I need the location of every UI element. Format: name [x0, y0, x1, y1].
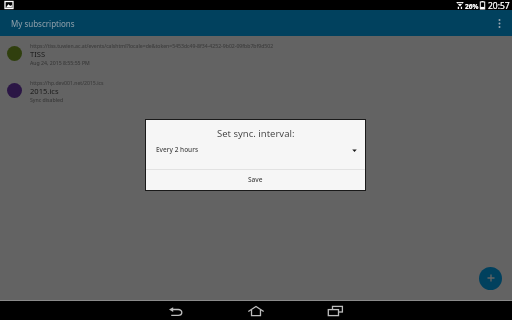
button[interactable]: Add subscription: [479, 267, 502, 290]
staticText: Every 2 hours: [156, 145, 199, 154]
staticText: 20:57: [488, 0, 510, 10]
staticText: My subscriptions: [11, 18, 75, 29]
button[interactable]: More options: [489, 13, 509, 33]
button[interactable]: Recent apps: [323, 302, 348, 320]
button[interactable]: https://hp.dev001.net/2015.ics: [0, 72, 512, 109]
button[interactable]: Save: [146, 170, 365, 190]
staticText: TISS: [30, 49, 46, 59]
staticText: 26%: [465, 2, 479, 11]
staticText: Sync disabled: [30, 96, 64, 103]
button[interactable]: https://tiss.tuwien.ac.at/events/calshtm…: [0, 35, 512, 72]
staticText: https://hp.dev001.net/2015.ics: [30, 79, 104, 86]
button[interactable]: Back: [163, 302, 188, 320]
staticText: Set sync. interval:: [217, 127, 295, 140]
staticText: Aug 24, 2015 8:55:55 PM: [30, 59, 90, 66]
staticText: 2015.ics: [30, 86, 59, 96]
button[interactable]: Every 2 hours: [146, 141, 365, 168]
staticText: Save: [248, 175, 263, 184]
staticText: https://tiss.tuwien.ac.at/events/calshtm…: [30, 42, 274, 49]
button[interactable]: Home: [243, 302, 268, 320]
